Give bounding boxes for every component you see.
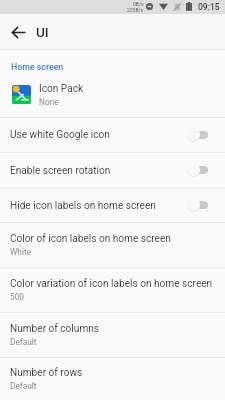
staticText: Enable screen rotation xyxy=(10,165,187,177)
staticText: Number of rows xyxy=(10,367,83,379)
button[interactable]: Number of rows xyxy=(0,358,225,400)
staticText: Color of icon labels on home screen xyxy=(10,233,171,245)
staticText: Default xyxy=(10,337,37,347)
button[interactable]: Color variation of icon labels on home s… xyxy=(0,268,225,312)
button[interactable]: Enable screen rotation xyxy=(0,153,225,188)
button[interactable]: Color of icon labels on home screen xyxy=(0,223,225,267)
staticText: None xyxy=(39,97,59,107)
button[interactable]: Back xyxy=(0,14,36,50)
staticText: Icon Pack xyxy=(39,83,84,95)
staticText: Number of columns xyxy=(10,323,100,335)
staticText: 225B/s xyxy=(127,7,144,13)
button[interactable]: Number of columns xyxy=(0,313,225,357)
staticText: Color variation of icon labels on home s… xyxy=(10,278,213,290)
staticText: Home screen xyxy=(11,62,64,72)
button[interactable]: Hide icon labels on home screen xyxy=(0,189,225,222)
button[interactable]: Icon Pack xyxy=(0,72,225,117)
staticText: 0B/s xyxy=(133,1,144,7)
button[interactable]: Use white Google icon xyxy=(0,118,225,152)
staticText: Hide icon labels on home screen xyxy=(10,200,187,212)
staticText: 500 xyxy=(10,292,24,302)
staticText: Use white Google icon xyxy=(10,129,187,141)
staticText: Default xyxy=(10,381,37,391)
staticText: 09:15 xyxy=(198,2,220,12)
staticText: UI xyxy=(36,24,49,40)
staticText: White xyxy=(10,247,32,257)
